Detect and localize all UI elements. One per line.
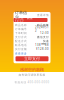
staticText: 微信支付	[37, 35, 49, 39]
staticText: 感谢您的惠顾	[20, 67, 44, 72]
staticText: 查看更多	[15, 52, 27, 55]
staticText: 商品名称	[15, 23, 27, 27]
staticText: ¥128.00	[36, 47, 49, 51]
staticText: 订单编号	[15, 27, 27, 31]
staticText: 配送方式	[15, 39, 27, 43]
staticText: 如有疑问请联系客服	[18, 73, 45, 76]
staticText: 实付金额	[15, 47, 27, 51]
staticText: 待付款 剩余 14:52	[15, 16, 33, 24]
staticText: 12:30	[40, 31, 49, 35]
staticText: 查看详情	[37, 13, 49, 17]
staticText: 联系电话	[15, 43, 27, 47]
button[interactable]: 立即支付	[15, 56, 48, 61]
staticText: 下单时间	[15, 31, 27, 35]
staticText: 快递	[43, 39, 49, 43]
staticText: 客服热线 400-000-0000	[14, 80, 49, 84]
staticText: 138****88	[35, 43, 49, 47]
staticText: 订单信息	[15, 10, 27, 20]
staticText: 20240512	[35, 25, 49, 33]
staticText: 精品套餐	[37, 23, 49, 27]
staticText: 支付方式	[15, 35, 27, 39]
staticText: 立即支付	[24, 56, 40, 61]
